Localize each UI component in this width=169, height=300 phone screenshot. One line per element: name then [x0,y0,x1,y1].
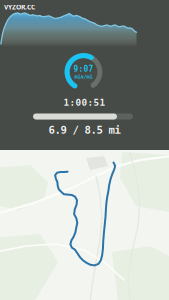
staticText: VYZOR.CC [4,2,35,11]
staticText: 1:00:51 [63,97,105,108]
staticText: min/mi [74,73,92,80]
staticText: 9:07 [73,64,93,73]
staticText: 6.9 / 8.5 mi [48,124,120,136]
button[interactable]: 9:07 [61,50,105,94]
